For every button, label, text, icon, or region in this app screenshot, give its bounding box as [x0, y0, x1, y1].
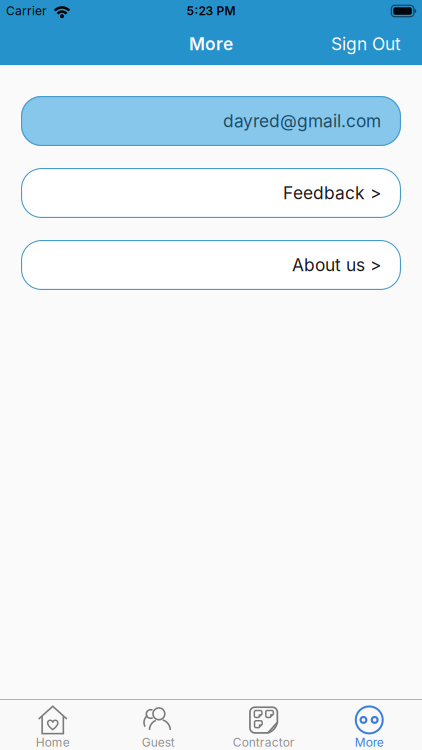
staticText: 5:23 PM — [186, 4, 235, 18]
staticText: More — [355, 735, 384, 750]
staticText: Feedback > — [283, 183, 381, 203]
button[interactable]: Home — [0, 700, 105, 750]
staticText: Guest — [142, 735, 175, 750]
button[interactable]: Feedback > — [21, 168, 401, 218]
button[interactable]: Sign Out — [331, 34, 401, 54]
staticText: More — [189, 34, 233, 54]
button[interactable]: Contractor — [211, 700, 316, 750]
staticText: Contractor — [233, 735, 295, 750]
staticText: Sign Out — [331, 34, 401, 54]
button[interactable]: About us > — [21, 240, 401, 290]
button[interactable]: dayred@gmail.com — [21, 96, 401, 146]
staticText: Home — [36, 735, 70, 750]
staticText: About us > — [292, 255, 381, 275]
button[interactable]: Guest — [105, 700, 211, 750]
staticText: dayred@gmail.com — [223, 111, 381, 131]
staticText: Carrier — [6, 4, 47, 18]
button[interactable]: More — [316, 700, 422, 750]
